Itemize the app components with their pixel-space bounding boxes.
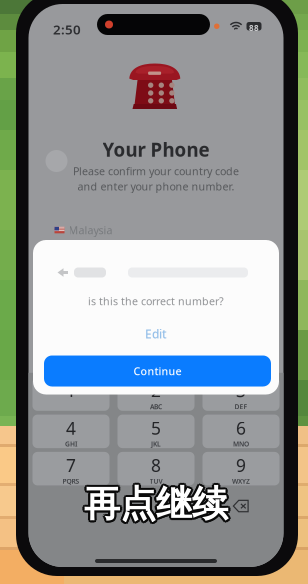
staticText: Please confirm your country code [73, 164, 239, 178]
button[interactable]: 9 [202, 452, 279, 485]
staticText: 再点继续 [86, 484, 230, 528]
staticText: 88 [249, 22, 259, 33]
staticText: 再点继续 [82, 484, 226, 528]
staticText: TUV [149, 477, 162, 486]
staticText: 6 [236, 416, 246, 439]
staticText: 再点继续 [82, 482, 226, 526]
staticText: 再点继续 [84, 480, 228, 524]
staticText: 5 [151, 416, 161, 439]
staticText: 1 [66, 379, 76, 402]
staticText: GHI [65, 439, 77, 448]
staticText: DEF [234, 402, 247, 411]
staticText: 再点继续 [84, 484, 228, 528]
staticText: is this the correct number? [88, 294, 224, 308]
staticText: 4 [66, 416, 76, 439]
staticText: 再点继续 [86, 480, 230, 525]
staticText: MNO [233, 439, 249, 448]
staticText: 8 [151, 454, 161, 477]
button[interactable]: 6 [202, 415, 279, 448]
staticText: 再点继续 [82, 480, 226, 525]
button[interactable]: 8 [117, 452, 194, 485]
staticText: 再点继续 [86, 482, 230, 526]
staticText: 2:50 [53, 20, 81, 38]
staticText: WXYZ [232, 477, 250, 486]
staticText: Your Phone [102, 137, 209, 162]
staticText: 再点继续 [84, 482, 228, 526]
button[interactable]: Delete [202, 489, 279, 523]
button[interactable]: Edit [129, 322, 183, 346]
staticText: PQRS [62, 477, 79, 486]
button[interactable]: 2 [117, 377, 194, 411]
button[interactable]: Continue [44, 355, 271, 386]
staticText: 2 [151, 379, 161, 402]
staticText: 7 [66, 454, 76, 477]
button[interactable]: 5 [117, 415, 194, 448]
staticText: Edit [145, 326, 167, 342]
staticText: ABC [150, 402, 162, 411]
button[interactable]: 7 [32, 452, 109, 485]
staticText: JKL [151, 439, 161, 448]
staticText: 3 [236, 379, 246, 402]
button[interactable]: 3 [202, 377, 279, 411]
staticText: and enter your phone number. [77, 179, 234, 193]
staticText: Malaysia [68, 223, 112, 237]
staticText: Continue [133, 364, 181, 378]
button[interactable]: 1 [32, 377, 109, 411]
button[interactable]: 4 [32, 415, 109, 448]
staticText: 9 [236, 454, 246, 477]
